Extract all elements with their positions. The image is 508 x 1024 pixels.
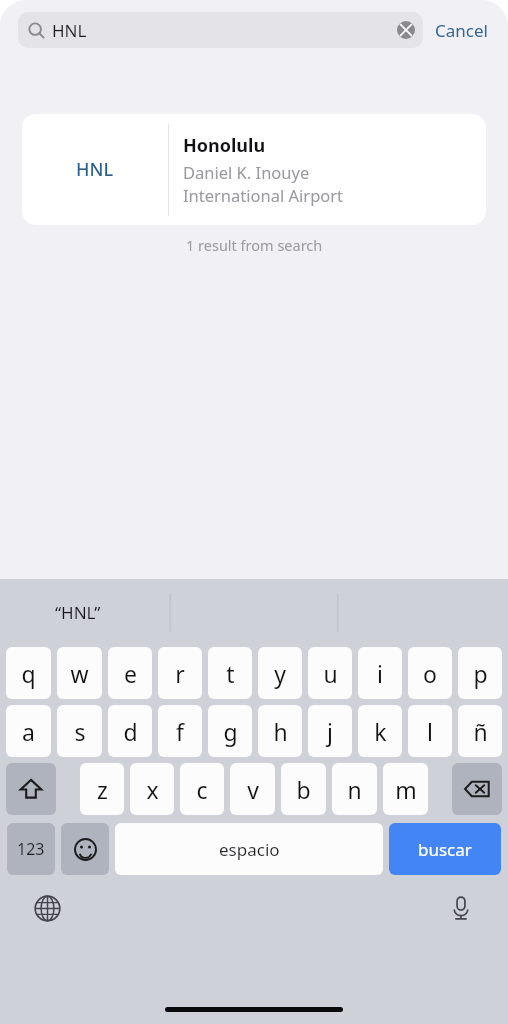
staticText: o: [423, 658, 437, 689]
button[interactable]: Backspace: [452, 763, 502, 815]
staticText: h: [273, 716, 288, 747]
button[interactable]: Emoji: [61, 823, 109, 875]
button[interactable]: l: [408, 705, 452, 757]
staticText: n: [347, 774, 362, 805]
button[interactable]: n: [332, 763, 377, 815]
button[interactable]: d: [108, 705, 152, 757]
staticText: k: [374, 716, 387, 747]
staticText: espacio: [219, 838, 280, 861]
staticText: Honolulu: [183, 133, 266, 158]
staticText: Daniel K. Inouye: [183, 161, 310, 183]
button[interactable]: o: [408, 647, 452, 699]
button[interactable]: h: [258, 705, 302, 757]
button[interactable]: s: [57, 705, 102, 757]
staticText: v: [247, 774, 259, 805]
button[interactable]: Shift: [6, 763, 56, 815]
button[interactable]: i: [358, 647, 402, 699]
staticText: m: [395, 774, 417, 805]
staticText: j: [327, 716, 333, 747]
button[interactable]: Clear text: [397, 21, 415, 39]
button[interactable]: Cancel: [423, 13, 490, 48]
staticText: HNL: [52, 19, 87, 42]
button[interactable]: u: [308, 647, 352, 699]
button[interactable]: w: [57, 647, 102, 699]
staticText: i: [377, 658, 383, 689]
button[interactable]: Change keyboard language: [32, 893, 62, 923]
staticText: ñ: [473, 716, 488, 747]
staticText: w: [70, 658, 89, 689]
button[interactable]: 123: [7, 823, 55, 875]
staticText: p: [473, 658, 488, 689]
staticText: 1 result from search: [186, 235, 323, 255]
button[interactable]: Dictation: [446, 893, 476, 923]
button[interactable]: f: [158, 705, 202, 757]
staticText: g: [223, 716, 238, 747]
staticText: q: [21, 658, 36, 689]
button[interactable]: z: [80, 763, 124, 815]
staticText: HNL: [76, 157, 114, 182]
button[interactable]: ñ: [458, 705, 502, 757]
button[interactable]: q: [6, 647, 51, 699]
button[interactable]: b: [281, 763, 326, 815]
staticText: b: [296, 774, 311, 805]
button[interactable]: m: [383, 763, 428, 815]
button[interactable]: a: [6, 705, 51, 757]
staticText: l: [427, 716, 433, 747]
button[interactable]: HNL: [22, 114, 486, 225]
staticText: c: [196, 774, 208, 805]
staticText: u: [323, 658, 338, 689]
staticText: “HNL”: [55, 601, 101, 624]
staticText: Cancel: [435, 19, 488, 42]
button[interactable]: y: [258, 647, 302, 699]
staticText: y: [274, 658, 286, 689]
staticText: buscar: [418, 838, 472, 861]
button[interactable]: espacio: [115, 823, 383, 875]
staticText: International Airport: [183, 184, 344, 206]
staticText: x: [146, 774, 159, 805]
staticText: 123: [17, 838, 45, 860]
button[interactable]: k: [358, 705, 402, 757]
staticText: d: [123, 716, 138, 747]
button[interactable]: p: [458, 647, 502, 699]
staticText: s: [74, 716, 86, 747]
button[interactable]: g: [208, 705, 252, 757]
staticText: a: [22, 716, 35, 747]
button[interactable]: c: [180, 763, 224, 815]
button[interactable]: t: [208, 647, 252, 699]
button[interactable]: e: [108, 647, 152, 699]
button[interactable]: x: [130, 763, 174, 815]
button[interactable]: r: [158, 647, 202, 699]
staticText: z: [97, 774, 108, 805]
staticText: t: [226, 658, 235, 689]
button[interactable]: HNL: [18, 12, 423, 48]
staticText: f: [176, 716, 184, 747]
button[interactable]: buscar: [389, 823, 501, 875]
staticText: r: [175, 658, 185, 689]
staticText: e: [124, 658, 137, 689]
button[interactable]: j: [308, 705, 352, 757]
button[interactable]: v: [230, 763, 275, 815]
